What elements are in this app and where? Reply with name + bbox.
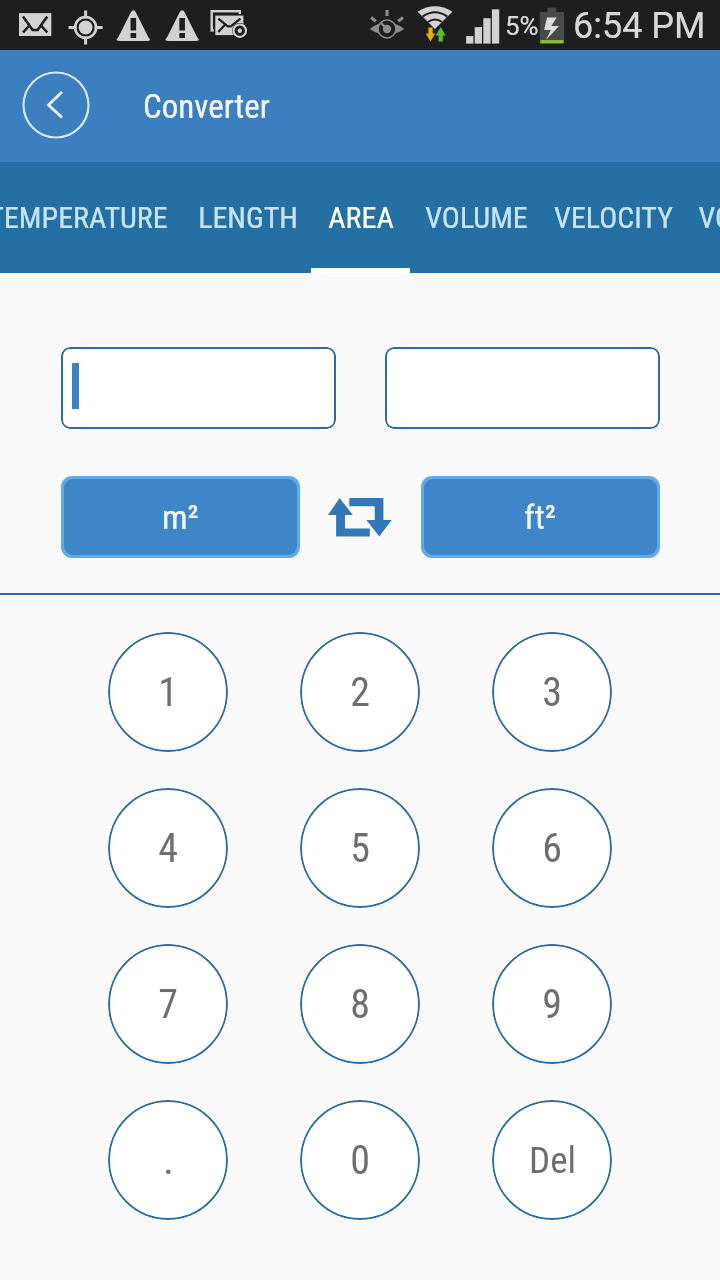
button[interactable]: VOLTAGE — [684, 162, 720, 273]
staticText: 0 — [350, 1137, 370, 1184]
button[interactable]: Swap units — [314, 483, 406, 551]
staticText: 5 — [350, 825, 370, 872]
staticText: Converter — [143, 87, 270, 126]
button[interactable] — [385, 347, 660, 429]
button[interactable]: Back — [22, 71, 90, 139]
staticText: TEMPERATURE — [0, 200, 168, 235]
staticText: m² — [162, 497, 199, 537]
staticText: . — [163, 1137, 174, 1184]
staticText: 5% — [505, 11, 539, 41]
staticText: VOLUME — [425, 200, 528, 235]
button[interactable]: VOLUME — [410, 162, 542, 273]
button[interactable]: 7 — [108, 944, 228, 1064]
button[interactable]: LENGTH — [184, 162, 311, 273]
staticText: 6:54 PM — [573, 5, 706, 47]
staticText: 3 — [542, 669, 562, 716]
staticText: Del — [529, 1139, 576, 1182]
staticText: 9 — [542, 981, 562, 1028]
staticText: ft² — [524, 497, 557, 537]
button[interactable]: 0 — [300, 1100, 420, 1220]
button[interactable]: ft² — [424, 479, 657, 555]
staticText: LENGTH — [198, 200, 298, 235]
button[interactable]: 4 — [108, 788, 228, 908]
button[interactable]: . — [108, 1100, 228, 1220]
staticText: 6 — [542, 825, 562, 872]
button[interactable]: 8 — [300, 944, 420, 1064]
button[interactable]: 5 — [300, 788, 420, 908]
staticText: VELOCITY — [554, 200, 673, 235]
button[interactable]: 9 — [492, 944, 612, 1064]
staticText: 2 — [350, 669, 370, 716]
button[interactable]: 6 — [492, 788, 612, 908]
button[interactable]: AREA — [311, 162, 410, 273]
staticText: 4 — [158, 825, 178, 872]
button[interactable]: TEMPERATURE — [0, 162, 184, 273]
staticText: 1 — [158, 669, 178, 716]
staticText: VOLTAGE — [698, 200, 720, 235]
button[interactable]: 3 — [492, 632, 612, 752]
staticText: AREA — [328, 200, 394, 235]
button[interactable]: m² — [64, 479, 297, 555]
button[interactable]: 1 — [108, 632, 228, 752]
button[interactable] — [61, 347, 336, 429]
button[interactable]: Del — [492, 1100, 612, 1220]
staticText: 8 — [350, 981, 370, 1028]
button[interactable]: 2 — [300, 632, 420, 752]
button[interactable]: VELOCITY — [542, 162, 684, 273]
staticText: 7 — [158, 981, 178, 1028]
